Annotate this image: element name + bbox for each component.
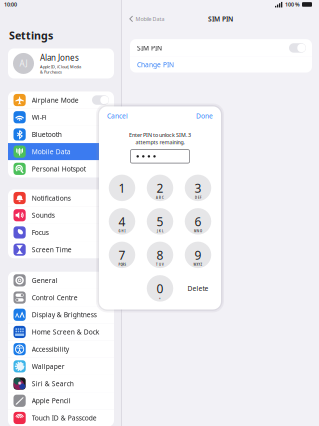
button[interactable]: SIM PIN <box>130 39 312 57</box>
staticText: attempts remaining. <box>135 138 184 146</box>
staticText: Alan Jones <box>40 52 79 63</box>
button[interactable]: Cancel <box>107 106 128 125</box>
staticText: 7 <box>118 247 125 263</box>
button[interactable]: Sounds <box>8 207 114 224</box>
button[interactable]: Touch ID & Passcode <box>8 409 114 426</box>
staticText: Cancel <box>107 111 128 120</box>
button[interactable]: 8 <box>147 242 173 268</box>
button[interactable]: Apple Pencil <box>8 392 114 409</box>
button[interactable]: Mobile Data <box>122 12 164 25</box>
button[interactable]: Home Screen & Dock <box>8 323 114 341</box>
staticText: WXYZ <box>193 263 202 267</box>
button[interactable]: Focus <box>8 224 114 241</box>
staticText: General <box>32 276 58 285</box>
staticText: Siri & Search <box>32 379 74 388</box>
staticText: Control Centre <box>32 293 78 302</box>
button[interactable]: 5 <box>147 208 173 235</box>
staticText: Display & Brightness <box>32 310 97 319</box>
staticText: 9 <box>194 247 201 263</box>
button[interactable]: 9 <box>185 242 211 268</box>
staticText: M N O <box>194 230 202 233</box>
staticText: 2 <box>156 180 163 196</box>
staticText: Touch ID & Passcode <box>32 413 97 422</box>
staticText: 8 <box>156 247 163 263</box>
staticText: Bluetooth <box>32 130 62 139</box>
staticText: 1 <box>118 180 125 196</box>
staticText: 4 <box>118 214 125 229</box>
button[interactable]: 6 <box>185 208 211 235</box>
button[interactable]: 0 <box>147 275 173 302</box>
button[interactable]: Bluetooth <box>8 126 114 143</box>
staticText: Done <box>196 111 213 120</box>
button[interactable]: 4 <box>109 208 135 235</box>
staticText: 3 <box>194 180 201 196</box>
staticText: A B C <box>156 196 164 200</box>
staticText: 5 <box>156 214 163 229</box>
staticText: + <box>159 297 161 300</box>
button[interactable]: AJ <box>8 48 114 78</box>
staticText: T U V <box>156 263 164 267</box>
staticText: 100 % <box>285 1 300 8</box>
button[interactable]: Personal Hotspot <box>8 160 114 177</box>
button[interactable]: Display & Brightness <box>8 306 114 323</box>
button[interactable]: Change PIN <box>130 57 312 72</box>
staticText: 6 <box>194 214 201 229</box>
staticText: Apple ID, iCloud, Media <box>40 64 81 69</box>
staticText: Sounds <box>32 211 55 220</box>
staticText: Wallpaper <box>32 362 65 371</box>
button[interactable]: Mobile Data <box>8 143 114 160</box>
button[interactable]: Airplane Mode <box>8 91 114 109</box>
staticText: SIM PIN <box>137 43 162 52</box>
button[interactable]: Delete <box>185 275 211 302</box>
staticText: Mobile Data <box>135 15 164 22</box>
staticText: Apple Pencil <box>32 396 71 405</box>
staticText: Home Screen & Dock <box>32 327 100 336</box>
staticText: Screen Time <box>32 245 72 254</box>
staticText: G H I <box>118 230 125 233</box>
button[interactable]: 2 <box>147 175 173 201</box>
staticText: Accessibility <box>32 345 69 354</box>
staticText: Mobile Data <box>32 147 71 156</box>
staticText: Change PIN <box>137 60 174 69</box>
button[interactable]: Notifications <box>8 189 114 207</box>
staticText: Delete <box>187 284 208 293</box>
button[interactable]: 7 <box>109 242 135 268</box>
button[interactable]: Wi-Fi <box>8 109 114 126</box>
staticText: Settings <box>9 28 53 43</box>
staticText: Enter PIN to unlock SIM. 3 <box>129 131 191 138</box>
staticText: D E F <box>195 196 201 200</box>
staticText: 0 <box>156 281 163 296</box>
button[interactable]: Screen Time <box>8 241 114 258</box>
staticText: Wi-Fi <box>32 113 47 122</box>
button[interactable]: General <box>8 272 114 289</box>
staticText: AJ <box>19 58 27 69</box>
staticText: Airplane Mode <box>32 96 79 104</box>
button[interactable]: Control Centre <box>8 289 114 306</box>
button[interactable]: 1 <box>109 175 135 201</box>
button[interactable]: Accessibility <box>8 341 114 358</box>
staticText: SIM PIN <box>208 14 233 23</box>
staticText: Focus <box>32 228 49 237</box>
staticText: Personal Hotspot <box>32 164 86 173</box>
staticText: & Purchases <box>40 69 62 75</box>
staticText: J K L <box>157 230 163 233</box>
button[interactable]: 3 <box>185 175 211 201</box>
button[interactable]: Wallpaper <box>8 358 114 375</box>
staticText: Notifications <box>32 194 71 202</box>
staticText: PQRS <box>118 263 125 267</box>
button[interactable]: Done <box>196 106 213 125</box>
staticText: 10:00 <box>4 1 17 8</box>
button[interactable]: Siri & Search <box>8 375 114 392</box>
